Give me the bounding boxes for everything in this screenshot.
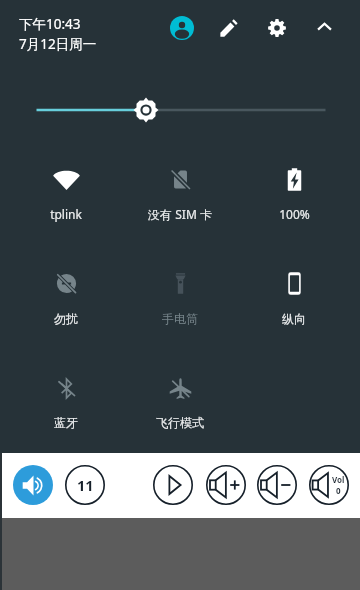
staticText: 没有 SIM 卡 (148, 206, 212, 222)
button[interactable]: Play (153, 465, 193, 505)
staticText: tplink (50, 206, 82, 222)
button[interactable]: Volume down (257, 465, 297, 505)
staticText: 100% (279, 206, 310, 222)
staticText: 11 (77, 475, 94, 495)
button[interactable] (142, 356, 218, 420)
staticText: 勿扰 (54, 311, 78, 326)
button[interactable] (28, 251, 104, 315)
button[interactable] (28, 147, 104, 211)
button[interactable]: Volume up (206, 465, 246, 505)
button[interactable] (142, 251, 218, 315)
button[interactable]: Settings (263, 14, 291, 42)
button[interactable] (28, 356, 104, 420)
button[interactable]: 11 (65, 465, 105, 505)
button[interactable]: Mute (309, 465, 349, 505)
staticText: 飞行模式 (156, 415, 204, 430)
button[interactable]: Account (165, 11, 199, 45)
button[interactable]: Collapse (311, 14, 338, 41)
staticText: 纵向 (282, 311, 306, 326)
button[interactable]: Edit (215, 14, 243, 42)
staticText: Vol (332, 474, 345, 485)
button[interactable]: Brightness (0, 94, 360, 126)
staticText: 蓝牙 (54, 415, 78, 430)
button[interactable]: Volume (13, 465, 53, 505)
staticText: 下午10:43 (19, 15, 81, 33)
button[interactable] (256, 147, 332, 211)
button[interactable] (256, 251, 332, 315)
staticText: 7月12日周一 (19, 35, 97, 53)
staticText: 手电筒 (162, 311, 198, 326)
button[interactable] (142, 147, 218, 211)
staticText: 0 (336, 485, 341, 496)
